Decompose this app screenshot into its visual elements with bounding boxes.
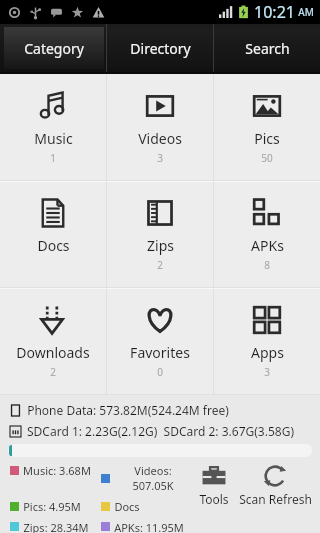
staticText: Directory xyxy=(130,39,191,58)
button[interactable]: Videos xyxy=(107,74,213,180)
button[interactable]: Directory xyxy=(107,27,213,69)
button[interactable]: Search xyxy=(214,27,320,69)
staticText: Downloads xyxy=(16,343,90,362)
staticText: Music xyxy=(34,129,73,148)
button[interactable]: Downloads xyxy=(0,289,106,394)
staticText: Zips: 28.34M xyxy=(23,520,89,533)
staticText: 2 xyxy=(157,258,163,272)
staticText: Docs xyxy=(114,499,140,514)
staticText: 3 xyxy=(157,151,163,165)
button[interactable]: Category xyxy=(4,27,104,69)
staticText: SDCard 1: 2.23G(2.12G) SDCard 2: 3.67G(3… xyxy=(27,423,294,439)
staticText: Apps xyxy=(251,343,284,362)
staticText: 2 xyxy=(50,365,56,379)
staticText: 3 xyxy=(264,365,270,379)
button[interactable]: Apps xyxy=(214,289,320,394)
staticText: Category xyxy=(24,39,84,58)
staticText: Tools xyxy=(199,491,229,507)
button[interactable]: Scan Refresh xyxy=(236,463,314,507)
staticText: AM xyxy=(298,5,314,19)
staticText: Search xyxy=(245,39,290,58)
button[interactable]: Zips xyxy=(107,182,213,287)
staticText: Docs xyxy=(37,236,70,255)
staticText: Music: 3.68M xyxy=(23,463,91,478)
staticText: Phone Data: 573.82M(524.24M free) xyxy=(27,402,229,418)
staticText: Zips xyxy=(147,236,174,255)
button[interactable]: Tools xyxy=(192,463,236,507)
staticText: Scan Refresh xyxy=(239,491,312,507)
staticText: Videos xyxy=(138,129,182,148)
staticText: 8 xyxy=(264,258,270,272)
staticText: 0 xyxy=(157,365,163,379)
staticText: APKs xyxy=(251,236,284,255)
button[interactable]: Pics xyxy=(214,74,320,180)
staticText: Pics: 4.95M xyxy=(23,499,81,514)
button[interactable]: Docs xyxy=(0,182,106,287)
button[interactable]: APKs xyxy=(214,182,320,287)
button[interactable]: Music xyxy=(0,74,106,180)
staticText: 50 xyxy=(261,151,273,165)
staticText: 10:21 xyxy=(254,1,295,23)
staticText: Pics xyxy=(254,129,280,148)
button[interactable]: Favorites xyxy=(107,289,213,394)
staticText: APKs: 11.95M xyxy=(114,520,184,533)
staticText: 1 xyxy=(50,151,56,165)
staticText: Favorites xyxy=(130,343,190,362)
staticText: Videos: 507.05K xyxy=(114,463,192,493)
